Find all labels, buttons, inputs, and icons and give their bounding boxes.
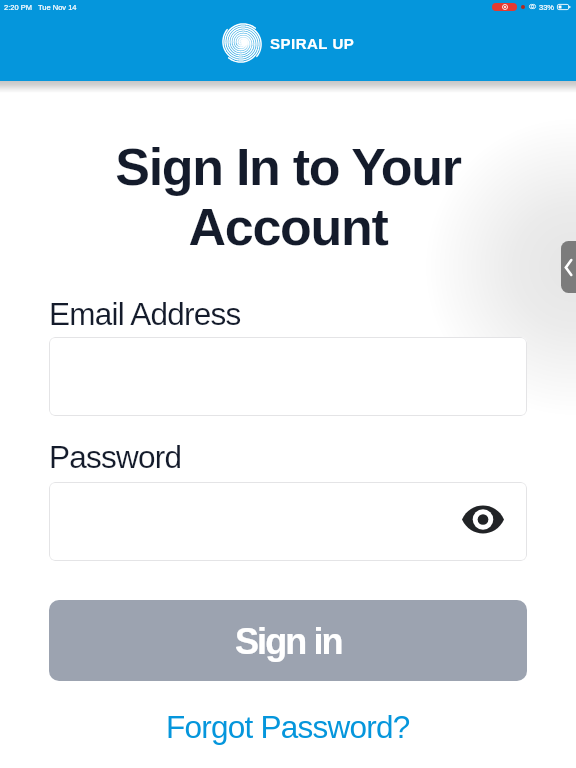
- button[interactable]: Sign in: [49, 600, 527, 681]
- button[interactable]: Show password: [459, 501, 507, 537]
- button[interactable]: Forgot Password?: [158, 707, 418, 746]
- button[interactable]: Open side panel: [561, 241, 576, 293]
- staticText: SPIRAL UP: [270, 35, 355, 52]
- staticText: 2:20 PM: [4, 3, 32, 11]
- button[interactable]: Show password: [49, 482, 527, 561]
- staticText: Sign in: [235, 621, 342, 661]
- staticText: Email Address: [49, 296, 241, 331]
- button[interactable]: Screen recording: [492, 3, 517, 11]
- staticText: Sign In to Your Account: [52, 138, 524, 256]
- staticText: Forgot Password?: [166, 709, 410, 744]
- staticText: Password: [49, 439, 182, 474]
- button[interactable]: [49, 337, 527, 416]
- staticText: Tue Nov 14: [38, 3, 77, 11]
- staticText: 33%: [539, 3, 555, 11]
